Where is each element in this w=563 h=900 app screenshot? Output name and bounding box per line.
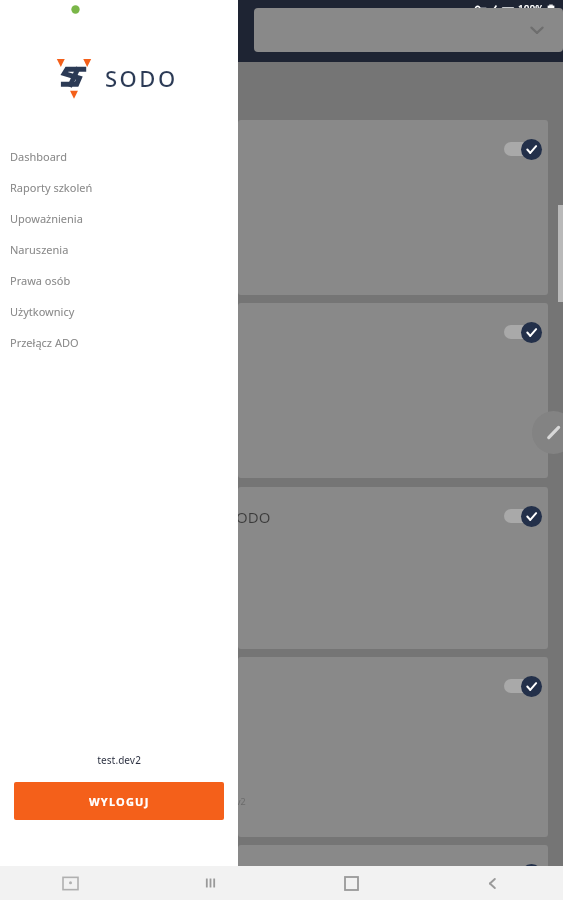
button[interactable]: Toggle bbox=[238, 120, 548, 295]
button[interactable]: Toggle bbox=[502, 505, 542, 527]
staticText: WYLOGUJ bbox=[89, 794, 150, 809]
button[interactable]: v2 bbox=[238, 657, 548, 837]
button[interactable]: Home bbox=[281, 866, 422, 900]
staticText: Przełącz ADO bbox=[10, 335, 79, 350]
button[interactable]: Dashboard bbox=[0, 141, 238, 172]
staticText: nji bbox=[238, 865, 254, 885]
button[interactable]: Naruszenia bbox=[0, 234, 238, 265]
button[interactable]: WYLOGUJ bbox=[14, 782, 224, 820]
button[interactable]: Toggle bbox=[502, 138, 542, 160]
button[interactable]: Toggle bbox=[502, 675, 542, 697]
button[interactable]: Raporty szkoleń bbox=[0, 172, 238, 203]
staticText: ODO bbox=[238, 507, 271, 527]
button[interactable]: Użytkownicy bbox=[0, 296, 238, 327]
button[interactable]: Przełącz ADO bbox=[0, 327, 238, 358]
staticText: 100% bbox=[518, 2, 544, 16]
button[interactable]: ODO bbox=[238, 487, 548, 649]
button[interactable]: Edit bbox=[532, 411, 563, 454]
button[interactable]: Keyboard bbox=[0, 866, 140, 900]
staticText: Naruszenia bbox=[10, 242, 69, 257]
staticText: SODO bbox=[105, 63, 178, 93]
button[interactable]: Back bbox=[422, 866, 563, 900]
staticText: Użytkownicy bbox=[10, 304, 75, 319]
button[interactable]: Recent apps bbox=[140, 866, 281, 900]
button[interactable]: Upoważnienia bbox=[0, 203, 238, 234]
staticText: Raporty szkoleń bbox=[10, 180, 93, 195]
button[interactable]: Toggle bbox=[502, 863, 542, 885]
button[interactable]: Toggle bbox=[502, 321, 542, 343]
staticText: Prawa osób bbox=[10, 273, 71, 288]
staticText: Upoważnienia bbox=[10, 211, 83, 226]
button[interactable]: Prawa osób bbox=[0, 265, 238, 296]
button[interactable]: Toggle bbox=[238, 303, 548, 478]
other: Expand bbox=[529, 22, 545, 38]
button[interactable]: nji bbox=[238, 845, 548, 900]
staticText: test.dev2 bbox=[97, 753, 141, 767]
staticText: Dashboard bbox=[10, 149, 67, 164]
staticText: v2 bbox=[238, 795, 246, 807]
